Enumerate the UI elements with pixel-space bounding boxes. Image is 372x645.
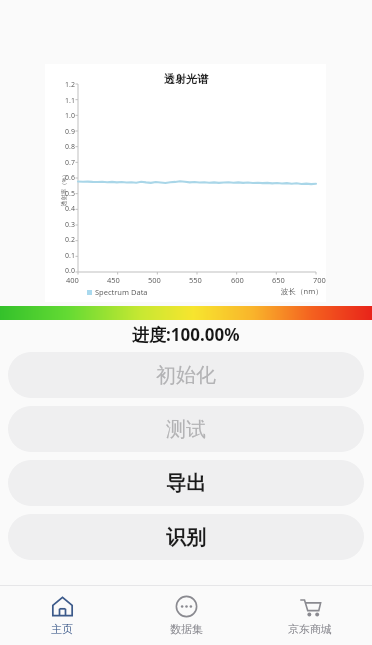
staticText: 0.0 bbox=[65, 266, 75, 276]
staticText: 波长（nm） bbox=[281, 286, 323, 296]
button[interactable]: 导出 bbox=[8, 460, 364, 506]
button[interactable]: 识别 bbox=[8, 514, 364, 560]
staticText: 400 bbox=[66, 275, 79, 285]
staticText: 0.9 bbox=[65, 127, 75, 137]
staticText: 导出 bbox=[166, 471, 206, 496]
staticText: 识别 bbox=[166, 525, 206, 550]
button[interactable]: 数据集 bbox=[124, 586, 248, 645]
staticText: 450 bbox=[107, 275, 120, 285]
staticText: 数据集 bbox=[170, 622, 203, 636]
staticText: 700 bbox=[313, 275, 326, 285]
staticText: 京东商城 bbox=[288, 622, 332, 636]
button[interactable]: 初始化 bbox=[8, 352, 364, 398]
staticText: 600 bbox=[231, 275, 244, 285]
staticText: 透射光谱 bbox=[164, 72, 208, 86]
staticText: 0.5 bbox=[65, 189, 75, 199]
staticText: 0.8 bbox=[65, 142, 75, 152]
staticText: 650 bbox=[272, 275, 285, 285]
staticText: 测试 bbox=[166, 417, 206, 442]
staticText: 透射率（%） bbox=[59, 171, 67, 206]
staticText: 500 bbox=[148, 275, 161, 285]
staticText: 0.7 bbox=[65, 158, 75, 168]
staticText: 初始化 bbox=[156, 363, 216, 388]
staticText: 进度:100.00% bbox=[132, 323, 240, 346]
button[interactable]: 测试 bbox=[8, 406, 364, 452]
staticText: 550 bbox=[189, 275, 202, 285]
staticText: Spectrum Data bbox=[95, 287, 148, 297]
button[interactable]: 京东商城 bbox=[248, 586, 372, 645]
staticText: 0.2 bbox=[65, 235, 75, 245]
staticText: 1.2 bbox=[65, 80, 75, 90]
staticText: 主页 bbox=[51, 622, 73, 636]
staticText: 1.0 bbox=[65, 111, 75, 121]
staticText: 0.3 bbox=[65, 220, 75, 230]
staticText: 0.1 bbox=[65, 251, 75, 261]
staticText: 0.6 bbox=[65, 173, 75, 183]
button[interactable]: 主页 bbox=[0, 586, 124, 645]
staticText: 1.1 bbox=[65, 96, 75, 106]
staticText: 0.4 bbox=[65, 204, 75, 214]
